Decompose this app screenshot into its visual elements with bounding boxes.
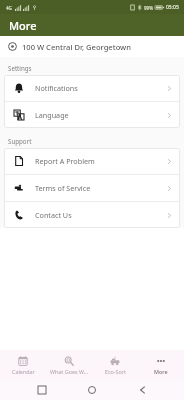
button[interactable]: Report A Problem	[4, 148, 180, 174]
staticText: Notifications	[35, 83, 166, 93]
button[interactable]: Notifications	[4, 75, 180, 101]
button[interactable]: Contact Us	[4, 202, 180, 228]
staticText: 99%	[144, 5, 153, 11]
button[interactable]: Eco-Sort	[92, 350, 138, 380]
staticText: Calendar	[12, 368, 35, 375]
staticText: 100 W Central Dr, Georgetown	[22, 42, 132, 52]
staticText: Language	[35, 110, 166, 120]
staticText: Contact Us	[35, 210, 166, 220]
button[interactable]: 100 W Central Dr, Georgetown	[0, 36, 184, 57]
staticText: Report A Problem	[35, 156, 166, 166]
staticText: More	[154, 368, 168, 375]
staticText: Terms of Service	[35, 183, 166, 193]
staticText: Support	[8, 137, 32, 145]
button[interactable]: Language	[4, 102, 180, 128]
staticText: 05:05	[166, 4, 179, 11]
button[interactable]: Terms of Service	[4, 175, 180, 201]
staticText: What Goes W...	[50, 368, 89, 375]
button[interactable]: More	[138, 350, 184, 380]
button[interactable]: What Goes W...	[46, 350, 92, 380]
staticText: Eco-Sort	[105, 368, 126, 375]
button[interactable]: Home	[83, 381, 101, 399]
staticText: 4G	[6, 5, 12, 11]
staticText: More	[9, 18, 37, 33]
button[interactable]: Back	[134, 381, 152, 399]
staticText: Settings	[8, 64, 32, 72]
button[interactable]: Calendar	[0, 350, 46, 380]
button[interactable]: Recent apps	[33, 381, 51, 399]
